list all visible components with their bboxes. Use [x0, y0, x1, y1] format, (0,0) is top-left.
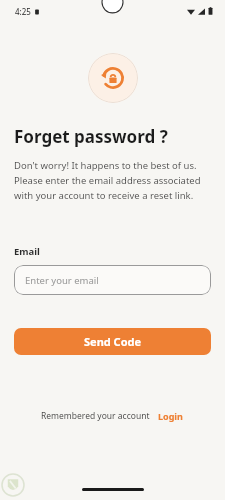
staticText: Login — [158, 410, 183, 422]
staticText: Remembered your account — [41, 410, 150, 422]
staticText: Don't worry! It happens to the best of u… — [14, 159, 211, 202]
staticText: 4:25 — [15, 6, 31, 17]
staticText: Forget password ? — [14, 125, 168, 148]
button[interactable]: Enter your email — [14, 265, 211, 295]
staticText: Send Code — [84, 334, 142, 349]
button[interactable]: Send Code — [14, 328, 211, 355]
button[interactable]: Login — [157, 408, 184, 424]
staticText: Email — [14, 245, 40, 258]
staticText: Enter your email — [25, 274, 99, 287]
